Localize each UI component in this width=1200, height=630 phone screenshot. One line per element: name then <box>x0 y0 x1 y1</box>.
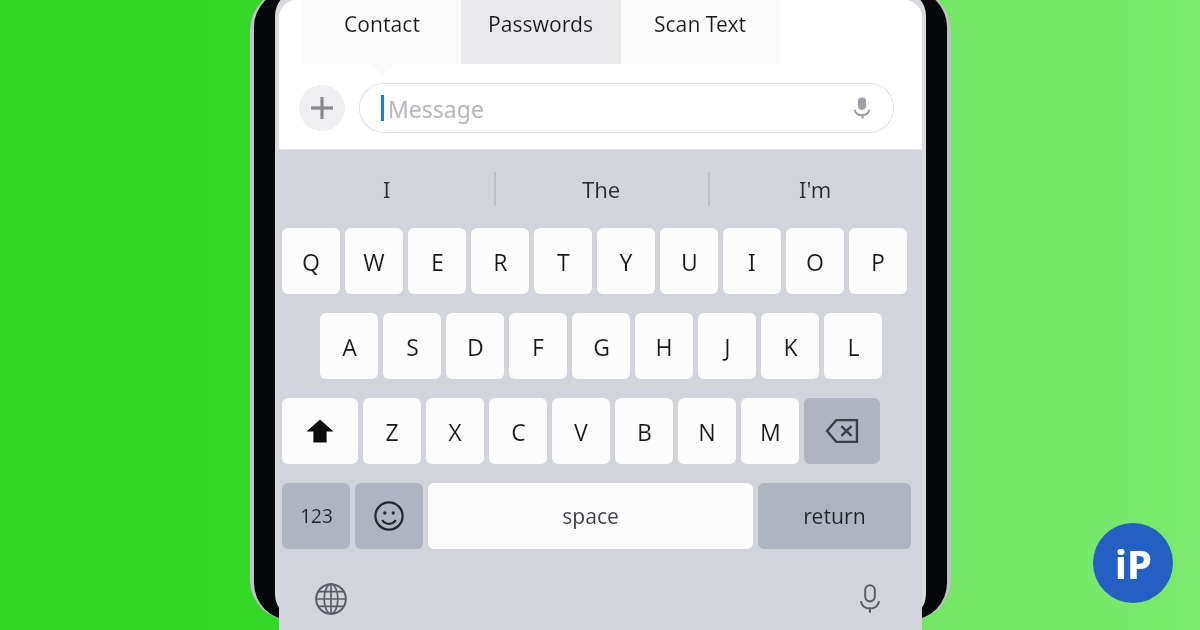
button[interactable]: A <box>320 313 378 379</box>
staticText: B <box>637 416 652 447</box>
button[interactable]: N <box>678 398 736 464</box>
button[interactable]: iPhones.ru logo <box>1093 523 1173 603</box>
staticText: T <box>557 246 570 277</box>
staticText: I <box>748 246 756 277</box>
button[interactable]: space <box>428 483 753 549</box>
staticText: space <box>562 502 619 531</box>
staticText: C <box>511 416 526 447</box>
staticText: Q <box>302 246 320 277</box>
button[interactable]: I'm <box>708 150 922 228</box>
button[interactable]: Z <box>363 398 421 464</box>
button[interactable]: R <box>471 228 529 294</box>
button[interactable]: E <box>408 228 466 294</box>
button[interactable]: C <box>489 398 547 464</box>
staticText: E <box>431 246 444 277</box>
staticText: A <box>342 331 357 362</box>
button[interactable]: Passwords <box>461 0 621 64</box>
button[interactable]: Dictate <box>846 92 878 124</box>
button[interactable]: 123 <box>282 483 350 549</box>
staticText: S <box>406 331 419 362</box>
button[interactable]: J <box>698 313 756 379</box>
staticText: N <box>698 416 716 447</box>
staticText: Contact <box>344 10 420 39</box>
button[interactable]: O <box>786 228 844 294</box>
button[interactable]: M <box>741 398 799 464</box>
button[interactable]: W <box>345 228 403 294</box>
button[interactable]: K <box>761 313 819 379</box>
staticText: return <box>803 502 866 531</box>
staticText: Passwords <box>488 10 594 39</box>
staticText: The <box>582 174 621 204</box>
staticText: Scan Text <box>654 10 747 39</box>
staticText: O <box>806 246 824 277</box>
button[interactable]: G <box>572 313 630 379</box>
staticText: R <box>493 246 508 277</box>
button[interactable]: Scan Text <box>621 0 780 64</box>
button[interactable]: Shift <box>282 398 358 464</box>
staticText: Message <box>388 93 484 124</box>
button[interactable]: S <box>383 313 441 379</box>
staticText: V <box>574 416 588 447</box>
button[interactable]: H <box>635 313 693 379</box>
button[interactable]: Backspace <box>804 398 880 464</box>
button[interactable]: Change keyboard <box>309 577 353 621</box>
staticText: Y <box>619 246 633 277</box>
button[interactable]: I <box>723 228 781 294</box>
staticText: J <box>724 331 731 362</box>
staticText: U <box>681 246 698 277</box>
staticText: X <box>448 416 462 447</box>
button[interactable]: I <box>279 150 494 228</box>
staticText: 123 <box>300 503 333 529</box>
staticText: P <box>871 246 885 277</box>
staticText: G <box>593 331 610 362</box>
button[interactable]: T <box>534 228 592 294</box>
button[interactable]: Contact <box>303 0 461 64</box>
button[interactable]: Message <box>359 83 894 133</box>
staticText: H <box>655 331 673 362</box>
staticText: M <box>760 416 781 447</box>
button[interactable]: D <box>446 313 504 379</box>
button[interactable]: return <box>758 483 911 549</box>
button[interactable]: Q <box>282 228 340 294</box>
staticText: F <box>532 331 544 362</box>
button[interactable]: X <box>426 398 484 464</box>
staticText: iP <box>1115 536 1152 590</box>
staticText: Z <box>385 416 399 447</box>
staticText: K <box>783 331 798 362</box>
button[interactable]: L <box>824 313 882 379</box>
staticText: W <box>363 246 385 277</box>
button[interactable]: B <box>615 398 673 464</box>
button[interactable]: Add attachment <box>299 85 345 131</box>
button[interactable]: Y <box>597 228 655 294</box>
staticText: D <box>467 331 484 362</box>
button[interactable]: The <box>494 150 708 228</box>
button[interactable]: F <box>509 313 567 379</box>
button[interactable]: V <box>552 398 610 464</box>
staticText: I <box>383 174 391 204</box>
button[interactable]: P <box>849 228 907 294</box>
button[interactable]: U <box>660 228 718 294</box>
staticText: I'm <box>799 174 832 204</box>
button[interactable]: Emoji <box>355 483 423 549</box>
button[interactable]: Dictation <box>848 577 892 621</box>
staticText: L <box>847 331 860 362</box>
